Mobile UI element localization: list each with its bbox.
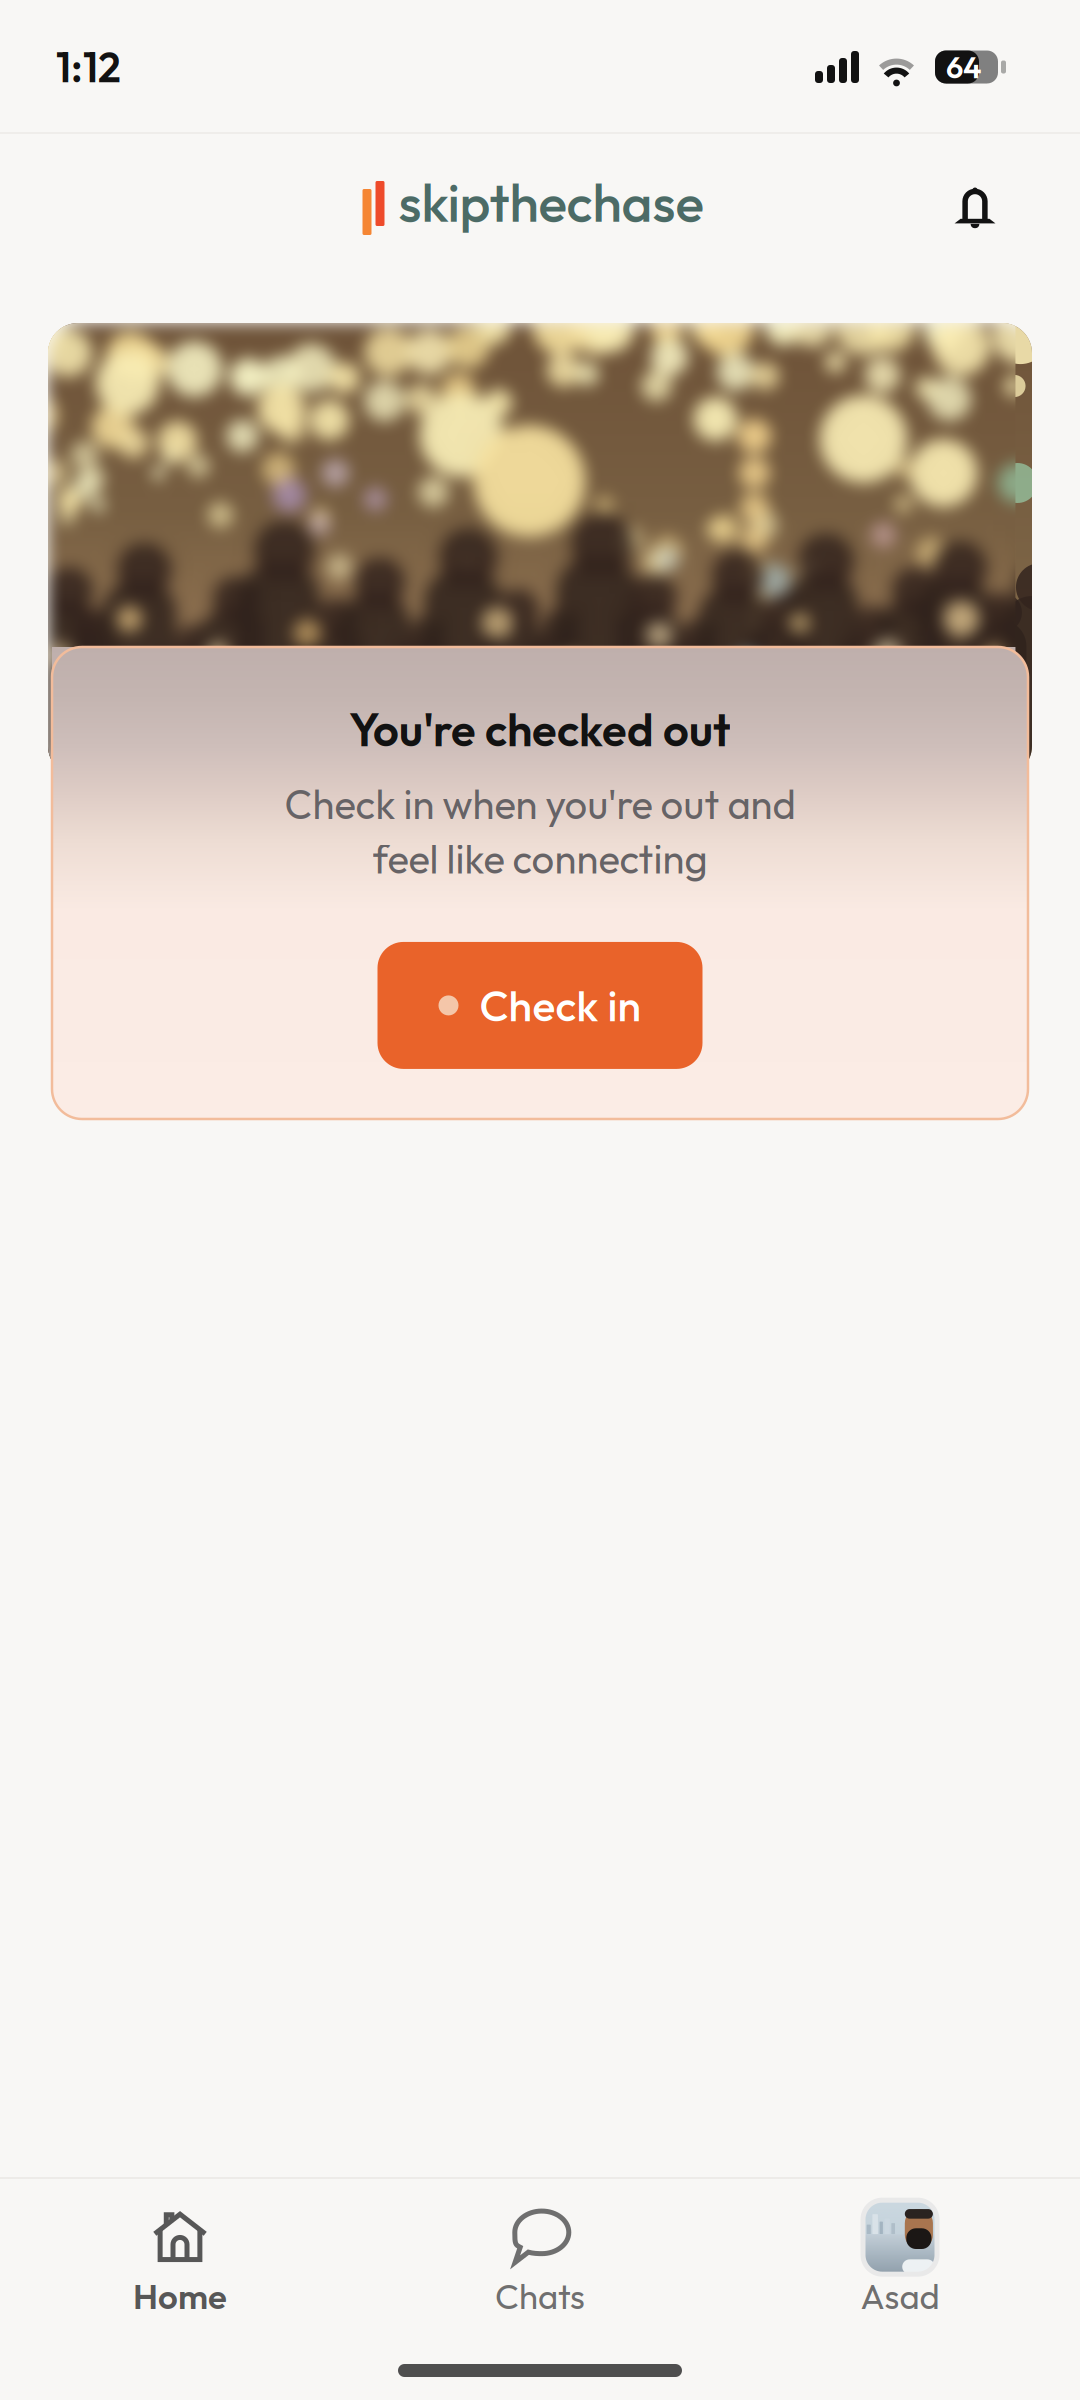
- staticText: Check in when you're out and: [284, 779, 795, 829]
- staticText: feel like connecting: [372, 833, 707, 884]
- button[interactable]: Asad: [720, 2200, 1080, 2333]
- staticText: You're checked out: [349, 701, 731, 758]
- staticText: Check in: [479, 978, 641, 1032]
- staticText: 1:12: [56, 41, 121, 93]
- staticText: Asad: [860, 2274, 939, 2318]
- button[interactable]: Check in: [377, 942, 702, 1069]
- button[interactable]: Notifications: [932, 165, 1018, 251]
- staticText: Home: [133, 2274, 227, 2318]
- staticText: 64: [946, 48, 982, 86]
- staticText: Chats: [495, 2274, 585, 2318]
- button[interactable]: Chats: [360, 2200, 720, 2333]
- staticText: skipthechase: [398, 168, 703, 236]
- button[interactable]: Home: [0, 2200, 360, 2333]
